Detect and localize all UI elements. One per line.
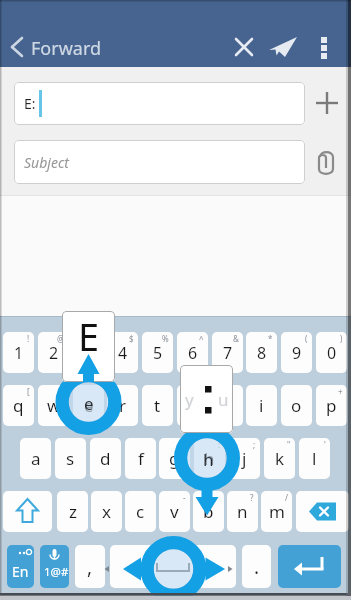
staticText: n — [237, 500, 248, 523]
staticText: s — [66, 447, 75, 470]
button[interactable]: p — [316, 385, 347, 426]
button[interactable]: 1@# — [40, 545, 69, 588]
button[interactable]: u — [212, 385, 243, 426]
button[interactable] — [312, 31, 336, 63]
staticText: * — [268, 333, 273, 344]
staticText: u — [222, 394, 233, 417]
staticText: [ — [27, 386, 30, 397]
button[interactable]: d — [90, 438, 121, 479]
staticText: 4 — [118, 342, 128, 364]
button[interactable]: e — [73, 385, 104, 426]
staticText: 7 — [223, 342, 233, 364]
button[interactable] — [230, 33, 258, 61]
button[interactable]: k — [264, 438, 295, 479]
button[interactable] — [3, 491, 52, 532]
button[interactable]: s — [55, 438, 86, 479]
button[interactable]: 3 — [73, 332, 104, 373]
button[interactable]: i — [246, 385, 277, 426]
button[interactable]: t — [142, 385, 173, 426]
button[interactable]: 6 — [177, 332, 208, 373]
staticText: 8 — [257, 342, 267, 364]
button[interactable]: a — [20, 438, 51, 479]
staticText: ! — [27, 333, 30, 344]
staticText: k — [275, 447, 285, 470]
staticText: Subject — [24, 153, 69, 172]
button[interactable]: o — [281, 385, 312, 426]
staticText: E: — [24, 94, 36, 113]
staticText: u — [218, 388, 229, 411]
staticText: Forward — [31, 36, 102, 61]
button[interactable]: 1 — [3, 332, 34, 373]
button[interactable]: c — [125, 491, 156, 532]
button[interactable]: f — [125, 438, 156, 479]
button[interactable]: v — [159, 491, 190, 532]
button[interactable]: b — [193, 491, 224, 532]
button[interactable]: E: — [14, 82, 305, 125]
staticText: En — [12, 562, 29, 581]
staticText: & — [233, 333, 239, 344]
staticText: o — [291, 394, 302, 417]
button[interactable] — [313, 148, 341, 176]
button[interactable]: Subject — [14, 140, 305, 184]
button[interactable]: j — [229, 438, 260, 479]
staticText: % — [162, 333, 169, 344]
button[interactable] — [278, 545, 341, 588]
staticText: . — [254, 554, 260, 580]
staticText: t — [154, 394, 161, 417]
staticText: / — [285, 492, 288, 503]
staticText: # — [94, 333, 100, 344]
staticText: m — [269, 500, 285, 523]
button[interactable]: 0 — [316, 332, 347, 373]
staticText: b — [203, 500, 214, 523]
staticText: z — [69, 500, 77, 523]
staticText: l — [312, 447, 317, 470]
button[interactable]: l — [299, 438, 330, 479]
staticText: : — [218, 439, 221, 450]
button[interactable]: g — [159, 438, 190, 479]
button[interactable]: 4 — [107, 332, 138, 373]
button[interactable] — [110, 545, 236, 588]
staticText: e — [84, 394, 94, 417]
button[interactable]: q — [3, 385, 34, 426]
button[interactable]: 2 — [38, 332, 69, 373]
staticText: 2 — [49, 342, 59, 364]
button[interactable]: , — [75, 545, 105, 588]
button[interactable]: x — [91, 491, 122, 532]
staticText: c — [136, 500, 145, 523]
staticText: ; — [253, 439, 256, 450]
button[interactable] — [268, 33, 300, 61]
button[interactable]: r — [107, 385, 138, 426]
staticText: ? — [250, 492, 254, 503]
button[interactable]: . — [242, 545, 271, 588]
staticText: ( — [305, 333, 308, 344]
button[interactable]: z — [57, 491, 88, 532]
staticText: E — [78, 311, 100, 362]
staticText: h — [203, 448, 214, 471]
button[interactable] — [313, 89, 341, 117]
staticText: , — [87, 554, 93, 580]
staticText: - — [183, 492, 186, 503]
button[interactable]: 7 — [212, 332, 243, 373]
button[interactable]: w — [38, 385, 69, 426]
staticText: i — [259, 394, 264, 417]
staticText: y — [185, 388, 194, 411]
button[interactable]: 9 — [281, 332, 312, 373]
staticText: a — [31, 447, 41, 470]
staticText: @ — [57, 333, 65, 344]
staticText: ' — [324, 439, 326, 450]
button[interactable] — [296, 491, 349, 532]
button[interactable]: m — [261, 491, 292, 532]
button[interactable]: n — [227, 491, 258, 532]
staticText: p — [326, 394, 337, 417]
staticText: x — [102, 500, 111, 523]
button[interactable]: 5 — [142, 332, 173, 373]
button[interactable]: Forward — [0, 28, 120, 67]
button[interactable]: En — [7, 545, 34, 588]
button[interactable]: 8 — [246, 332, 277, 373]
staticText: 1@# — [44, 564, 69, 580]
button[interactable]: h — [194, 438, 225, 479]
staticText: w — [47, 394, 61, 417]
button[interactable]: y — [177, 385, 208, 426]
staticText: $ — [129, 333, 134, 344]
